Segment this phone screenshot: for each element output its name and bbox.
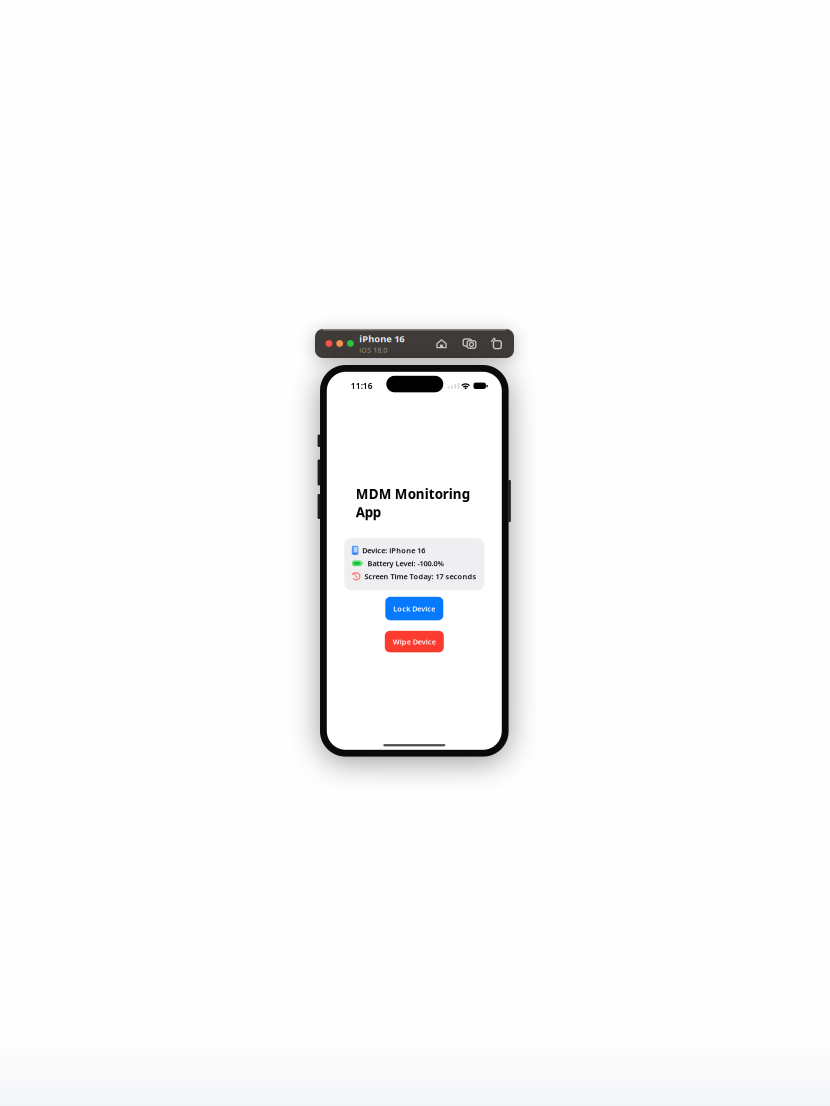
staticText: Wipe Device — [393, 637, 436, 647]
staticText: App — [356, 503, 381, 521]
button[interactable]: Wipe Device — [385, 631, 444, 652]
staticText: MDM Monitoring — [356, 485, 470, 503]
button[interactable]: Rotate device — [492, 338, 501, 348]
staticText: Screen Time Today: 17 seconds — [364, 571, 476, 581]
button[interactable]: Lock Device — [385, 597, 443, 620]
staticText: 11:16 — [351, 380, 373, 391]
staticText: Lock Device — [393, 604, 435, 614]
staticText: iPhone 16 — [359, 332, 404, 345]
button[interactable]: Screenshot — [463, 338, 476, 348]
staticText: Battery Level: -100.0% — [367, 558, 443, 568]
button[interactable]: Home — [436, 338, 447, 348]
staticText: iOS 18.0 — [359, 345, 387, 355]
staticText: Device: iPhone 16 — [362, 545, 425, 555]
